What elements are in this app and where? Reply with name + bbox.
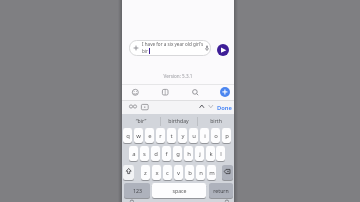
staticText: n [199,169,203,177]
button[interactable] [217,44,229,56]
staticText: I have for a six year old girl's [142,41,204,47]
button[interactable] [129,40,211,56]
button[interactable]: l [216,146,225,161]
staticText: x [155,169,159,177]
staticText: a [132,150,136,158]
button[interactable] [220,87,230,97]
staticText: d [154,150,158,158]
button[interactable]: j [195,146,204,161]
button[interactable]: b [185,165,194,180]
button[interactable]: g [173,146,182,161]
button[interactable]: v [174,165,183,180]
button[interactable] [123,165,134,180]
button[interactable]: m [207,165,216,180]
button[interactable]: Done [217,104,232,112]
button[interactable]: s [140,146,149,161]
button[interactable]: n [196,165,205,180]
staticText: v [177,169,180,177]
staticText: k [209,150,213,158]
button[interactable]: h [184,146,193,161]
button[interactable]: a [129,146,138,161]
staticText: q [126,132,130,140]
button[interactable]: p [222,128,231,143]
staticText: o [214,132,218,140]
staticText: y [181,132,185,140]
staticText: g [176,150,180,158]
button[interactable]: z [141,165,150,180]
staticText: return [213,187,229,194]
staticText: s [143,150,146,158]
button[interactable]: e [145,128,154,143]
staticText: Version: 5.3.1 [122,73,234,79]
button[interactable]: t [167,128,176,143]
staticText: 123 [133,187,142,194]
button[interactable]: “bir” [122,117,160,124]
button[interactable]: return [209,183,233,198]
staticText: f [165,150,168,158]
staticText: j [199,150,201,158]
button[interactable] [162,89,168,95]
staticText: r [159,132,162,140]
button[interactable] [199,104,205,109]
button[interactable]: birth [197,117,235,124]
staticText: m [209,169,215,177]
staticText: p [225,132,229,140]
staticText: c [166,169,169,177]
button[interactable]: f [162,146,171,161]
button[interactable]: d [151,146,160,161]
staticText: w [136,132,141,140]
button[interactable] [192,89,199,96]
staticText: z [144,169,147,177]
staticText: e [148,132,152,140]
button[interactable] [132,89,139,96]
button[interactable] [222,165,233,180]
button[interactable] [141,104,149,110]
button[interactable]: x [152,165,161,180]
button[interactable]: y [178,128,187,143]
button[interactable]: c [163,165,172,180]
button[interactable]: r [156,128,165,143]
button[interactable]: q [123,128,132,143]
button[interactable]: i [200,128,209,143]
button[interactable]: w [134,128,143,143]
button[interactable] [208,104,214,109]
button[interactable]: k [206,146,215,161]
staticText: bir [142,48,148,54]
staticText: h [187,150,191,158]
staticText: t [170,132,173,140]
staticText: l [220,150,222,158]
button[interactable]: u [189,128,198,143]
button[interactable] [129,104,137,109]
button[interactable]: space [152,183,206,198]
staticText: i [204,132,206,140]
button[interactable]: 123 [124,183,150,198]
button[interactable]: birthday [160,117,197,124]
staticText: b [188,169,192,177]
button[interactable]: o [211,128,220,143]
staticText: u [192,132,196,140]
staticText: space [172,187,187,194]
